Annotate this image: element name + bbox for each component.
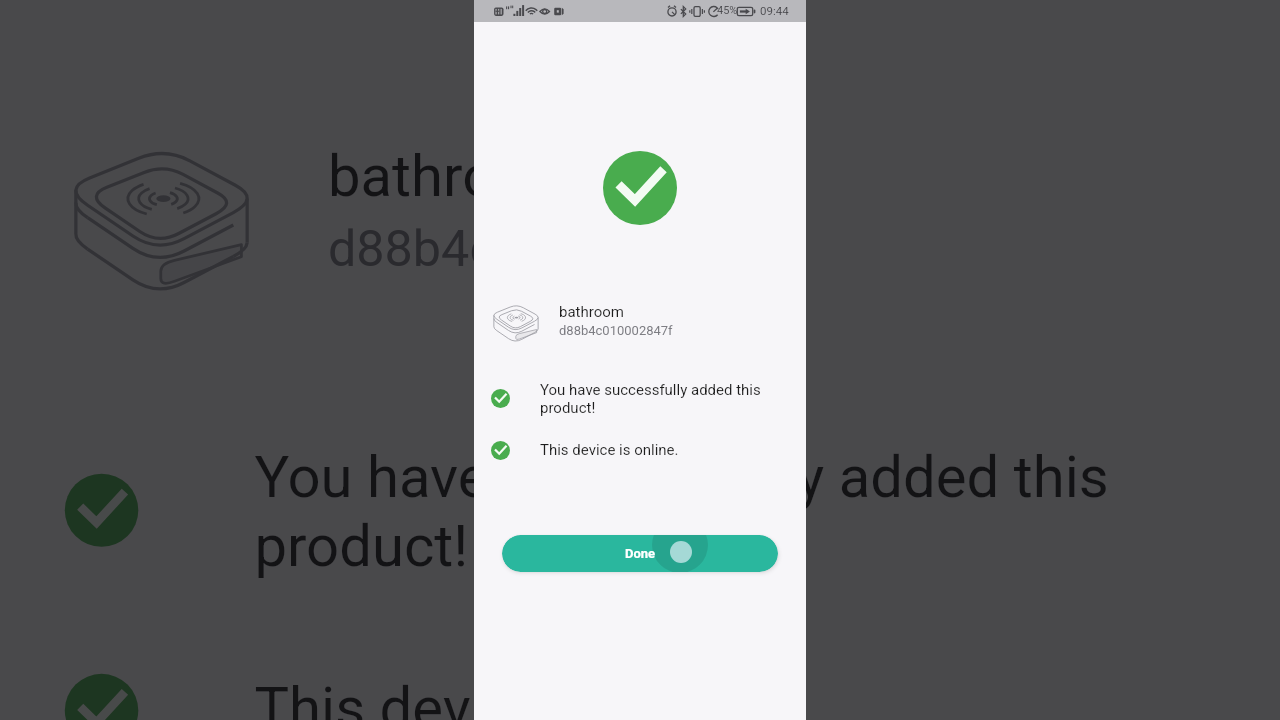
staticText: You have successfully added this product… xyxy=(540,381,762,417)
staticText: d88b4c010002847f xyxy=(559,323,673,338)
staticText: 09:44 xyxy=(760,4,789,17)
staticText: bathroom xyxy=(559,303,624,321)
button[interactable]: Done xyxy=(502,535,778,572)
staticText: d88b4c010002847f xyxy=(328,219,769,277)
staticText: This device is online. xyxy=(254,674,792,720)
staticText: You have successfully added this product… xyxy=(254,443,1113,581)
staticText: bathroom xyxy=(328,142,579,212)
staticText: Done xyxy=(625,546,656,561)
staticText: This device is online. xyxy=(540,441,679,459)
staticText: 45% xyxy=(717,4,738,17)
